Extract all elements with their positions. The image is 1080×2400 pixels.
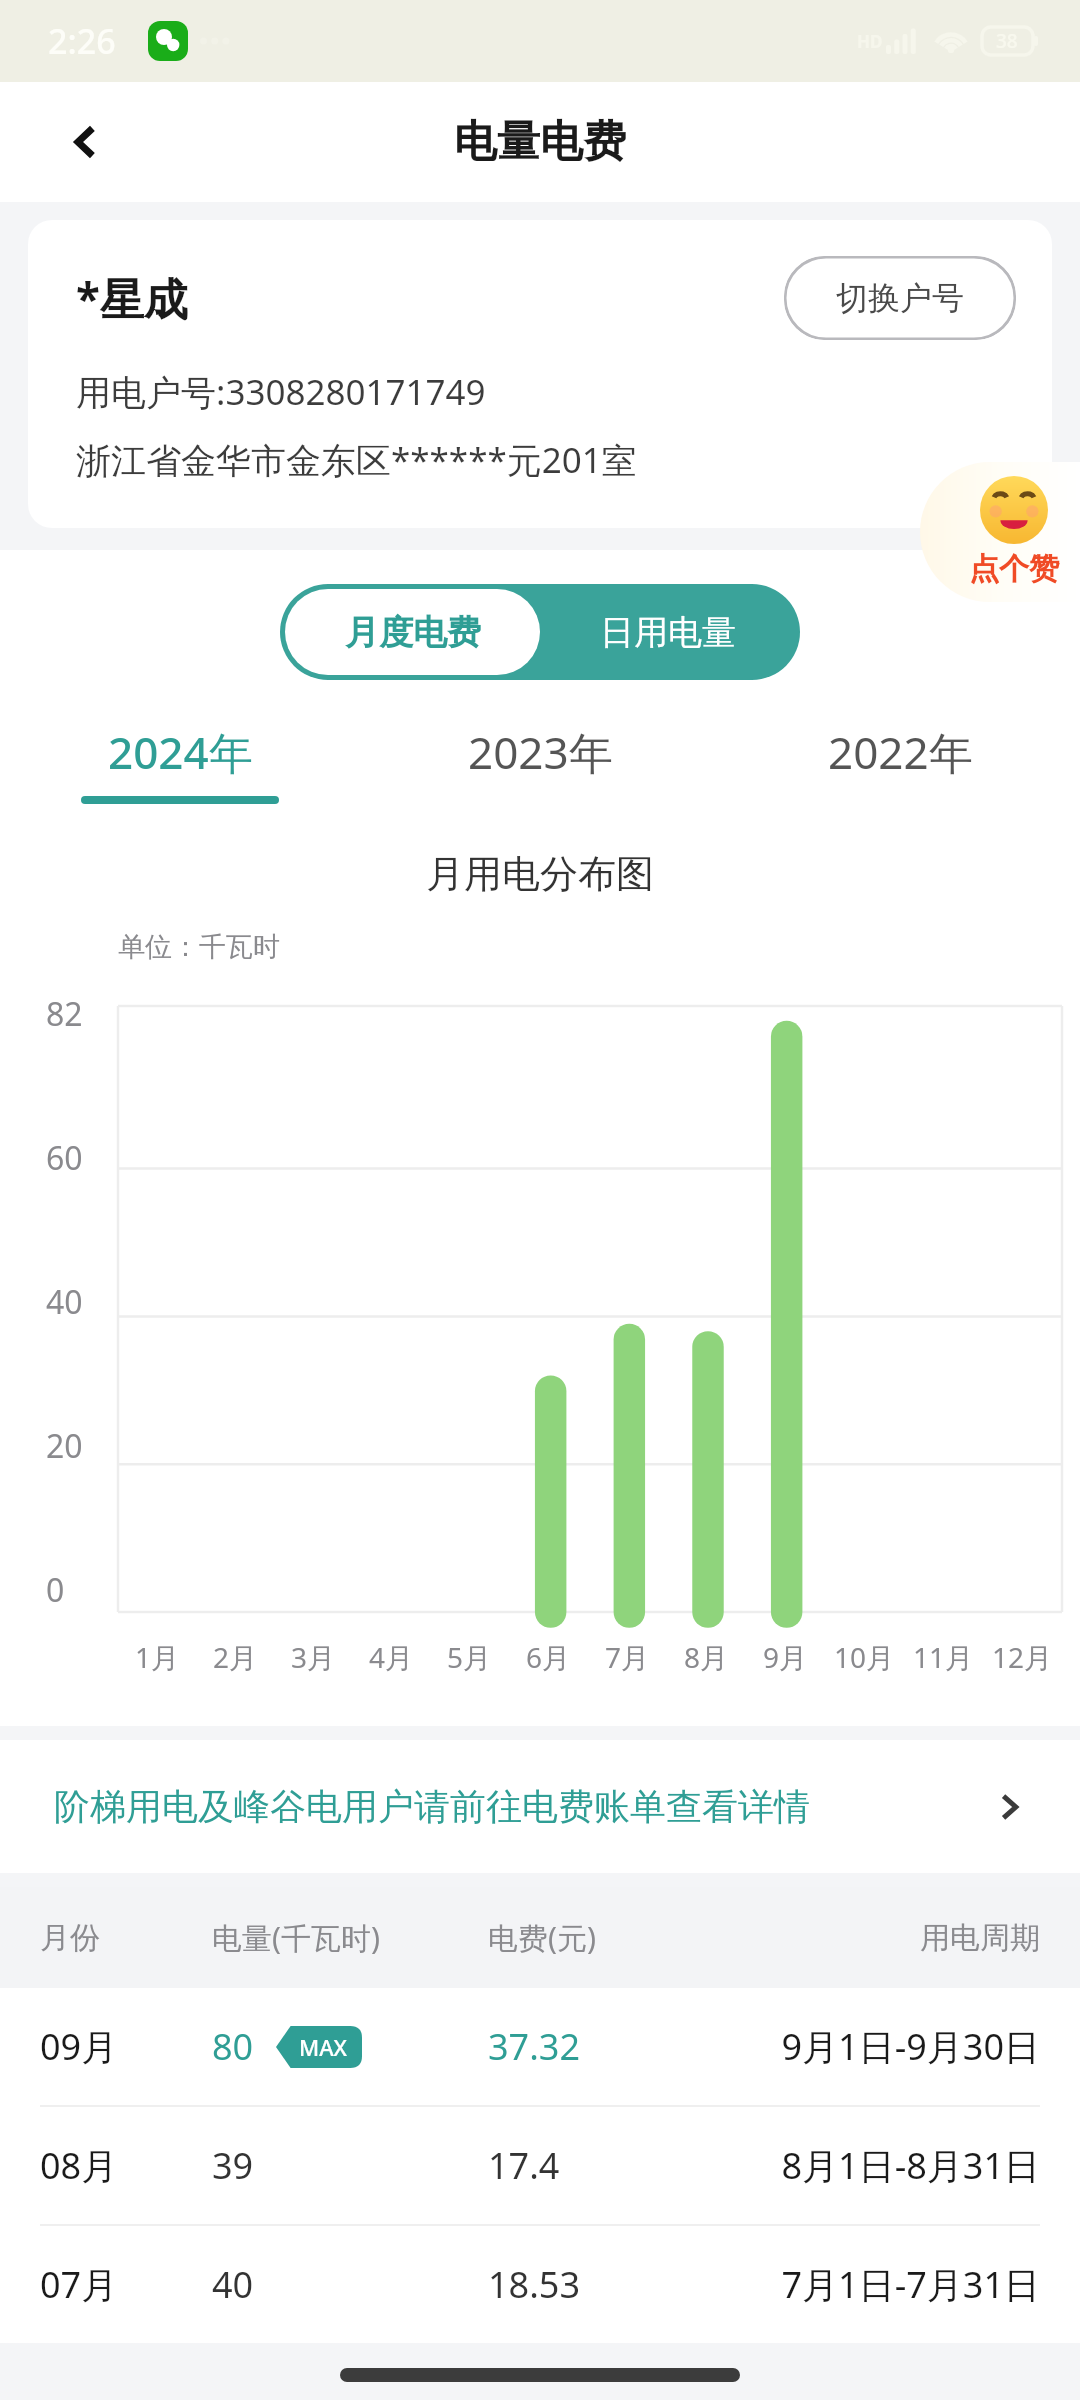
staticText: 12月 [992,1638,1053,1676]
staticText: 40 [46,1280,83,1324]
staticText: 17.4 [488,2141,747,2190]
button[interactable]: 2024年 [0,722,360,804]
staticText: 08月 [40,2141,212,2190]
staticText: 点个赞 [969,550,1059,588]
button[interactable]: 日用电量 [540,589,795,675]
staticText: 用电户号:3308280171749 [76,368,486,416]
button[interactable]: 09月 [0,1988,1080,2105]
staticText: 2023年 [468,722,613,782]
staticText: 月用电分布图 [0,850,1080,898]
staticText: MAX [299,2032,348,2062]
staticText: 2:26 [48,18,116,64]
staticText: 7月 [605,1638,650,1676]
staticText: *星成 [76,268,188,328]
button[interactable]: 阶梯用电及峰谷电用户请前往电费账单查看详情 [0,1740,1080,1873]
button[interactable]: 切换户号 [784,256,1016,340]
staticText: 浙江省金华市金东区******元201室 [76,436,637,484]
staticText: 电费(元) [488,1917,747,1958]
staticText: 0 [46,1568,65,1612]
staticText: 电量电费 [454,115,626,169]
staticText: 用电周期 [747,1919,1040,1957]
button[interactable]: 点个赞 [920,462,1080,602]
staticText: HD [857,30,883,53]
staticText: 38 [996,28,1018,54]
staticText: 60 [46,1136,83,1180]
staticText: 4月 [369,1638,414,1676]
staticText: 月份 [40,1919,212,1957]
staticText: 2月 [213,1638,258,1676]
staticText: 8月1日-8月31日 [747,2141,1040,2190]
staticText: 40 [212,2260,254,2309]
staticText: 7月1日-7月31日 [747,2260,1040,2309]
staticText: 09月 [40,2022,212,2071]
staticText: 20 [46,1424,83,1468]
staticText: 3月 [291,1638,336,1676]
staticText: 39 [212,2141,254,2190]
staticText: 月度电费 [345,611,481,654]
staticText: 37.32 [488,2022,747,2071]
button[interactable]: 07月 [0,2226,1080,2343]
staticText: 1月 [135,1638,180,1676]
staticText: 80 [212,2022,254,2071]
staticText: 82 [46,992,83,1036]
staticText: 8月 [684,1638,729,1676]
button[interactable]: 08月 [0,2107,1080,2224]
button[interactable]: 2022年 [720,722,1080,804]
button[interactable]: *星成 [28,220,1052,528]
button[interactable]: 月度电费 [285,589,540,675]
staticText: 6月 [526,1638,571,1676]
staticText: 日用电量 [600,611,736,654]
staticText: 07月 [40,2260,212,2309]
button[interactable]: Back [54,110,118,174]
staticText: 切换户号 [836,278,964,318]
staticText: 9月1日-9月30日 [747,2022,1040,2071]
staticText: 11月 [913,1638,974,1676]
staticText: 电量(千瓦时) [212,1917,488,1958]
staticText: 18.53 [488,2260,747,2309]
button[interactable]: 2023年 [360,722,720,804]
staticText: 5月 [447,1638,492,1676]
staticText: 单位：千瓦时 [118,930,280,964]
staticText: 9月 [763,1638,808,1676]
staticText: 10月 [834,1638,895,1676]
staticText: 2024年 [108,722,253,782]
staticText: 阶梯用电及峰谷电用户请前往电费账单查看详情 [54,1784,810,1829]
staticText: 2022年 [828,722,973,782]
